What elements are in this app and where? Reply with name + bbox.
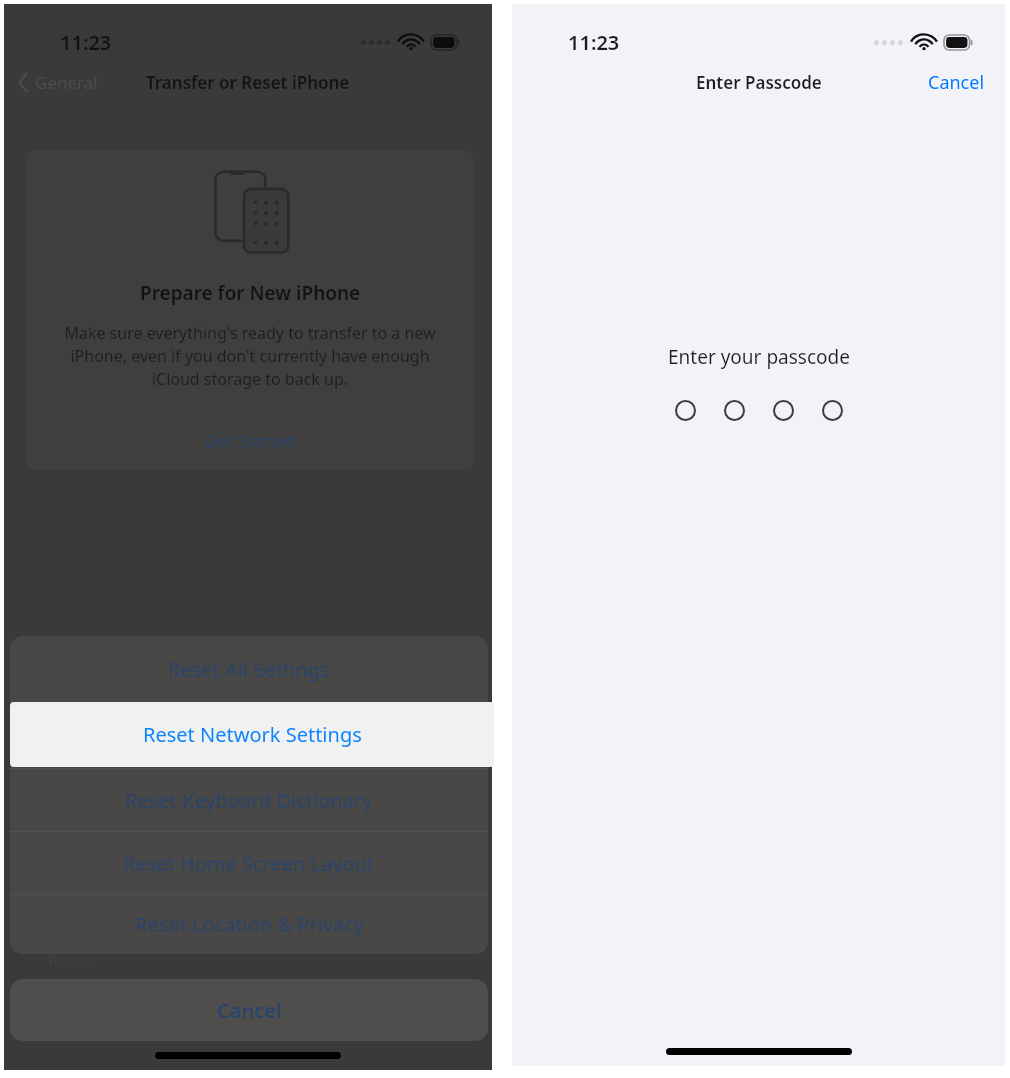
staticText: Get Started	[205, 429, 296, 452]
staticText: Enter your passcode	[668, 344, 850, 370]
button[interactable]: Reset Keyboard Dictionary	[10, 769, 488, 831]
staticText: Cancel	[928, 70, 985, 95]
staticText: Make sure everything's ready to transfer…	[48, 322, 452, 390]
button[interactable]: Cancel	[10, 979, 488, 1041]
staticText: Reset Network Settings	[143, 721, 362, 748]
staticText: 11:23	[568, 29, 620, 56]
button[interactable]: Reset Home Screen Layout	[10, 832, 488, 894]
staticText: Reset Home Screen Layout	[123, 850, 375, 877]
button[interactable]: Reset Network Settings	[10, 702, 494, 767]
staticText: Prepare for New iPhone	[140, 280, 361, 306]
button[interactable]: Get Started	[193, 425, 308, 456]
button[interactable]: Reset All Settings	[10, 636, 488, 702]
staticText: 11:23	[60, 29, 112, 56]
staticText: Reset All Settings	[168, 656, 330, 683]
staticText: General	[35, 71, 98, 94]
staticText: Reset Keyboard Dictionary	[125, 787, 373, 814]
button[interactable]: Reset Location & Privacy	[10, 895, 488, 954]
button[interactable]: Cancel	[920, 64, 993, 101]
staticText: Reset Location & Privacy	[135, 911, 364, 938]
staticText: Cancel	[217, 997, 282, 1024]
staticText: Reset	[48, 950, 90, 972]
staticText: Transfer or Reset iPhone	[146, 71, 350, 94]
staticText: Enter Passcode	[696, 71, 822, 94]
button[interactable]: General	[14, 65, 102, 100]
